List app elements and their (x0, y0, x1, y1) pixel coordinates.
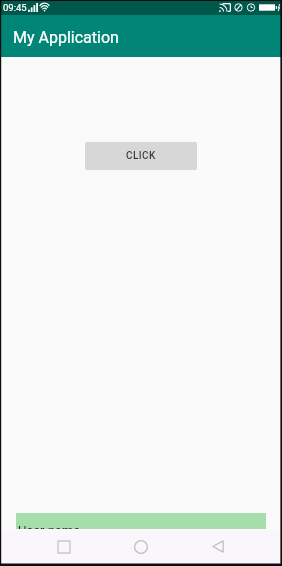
button[interactable]: Recent apps (47, 530, 81, 563)
button[interactable]: Home (124, 530, 158, 563)
staticText: CLICK (126, 150, 156, 162)
staticText: User name (18, 523, 81, 529)
staticText: 09:45 (3, 2, 27, 13)
button[interactable]: CLICK (85, 142, 197, 170)
button[interactable]: Back (201, 530, 235, 563)
button[interactable]: User name (16, 513, 266, 529)
staticText: My Application (13, 28, 119, 47)
